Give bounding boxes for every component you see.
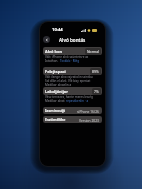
staticText: Alvó bontás (59, 37, 86, 43)
staticText: siPhone 16/26 (77, 109, 99, 113)
staticText: 7% (94, 89, 99, 94)
button[interactable]: Lakoljánijar (43, 87, 102, 95)
button[interactable]: Esztimélthe (43, 116, 102, 123)
staticText: Iotathon. (45, 59, 60, 63)
staticText: Tovább · Még (60, 59, 80, 63)
staticText: Sol dlőn el alvó. Vlé bizy epestat (45, 79, 91, 83)
staticText: Alvó bon (45, 49, 62, 54)
staticText: Medikor alvot (45, 99, 66, 103)
button[interactable]: Iasminouijt (43, 107, 102, 114)
button[interactable]: Back (43, 36, 50, 43)
staticText: Iasminouijt (45, 108, 66, 113)
staticText: Vész tervezes, hante meres ksvég (45, 95, 93, 99)
button[interactable]: Felejtspaci (43, 67, 102, 75)
staticText: repestbenlin · a (66, 99, 89, 103)
staticText: 10:44 (52, 27, 63, 33)
button[interactable]: Alvó bon (43, 47, 102, 55)
staticText: 89% (92, 69, 99, 74)
staticText: Normal (87, 49, 99, 54)
staticText: Vált ilenge alvo rajvatiolin szintbu (45, 75, 93, 79)
staticText: Esztimélthe (45, 117, 66, 122)
staticText: Version 2023 (79, 118, 99, 122)
staticText: Vált: iPhone alvó szüntetsre az (45, 55, 89, 59)
staticText: Medikor alvoelin a (45, 83, 72, 87)
staticText: Felejtspaci (45, 69, 66, 74)
staticText: Lakoljánijar (45, 89, 68, 94)
